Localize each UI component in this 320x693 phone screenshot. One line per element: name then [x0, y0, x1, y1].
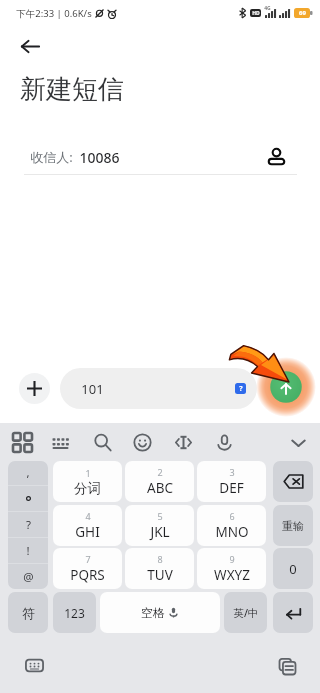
button[interactable]: !	[8, 538, 48, 563]
staticText: JKL	[150, 523, 170, 541]
button[interactable]: 0	[273, 548, 313, 589]
staticText: 0	[289, 560, 297, 578]
staticText: ABC	[147, 479, 173, 497]
staticText: 下午2:33 | 0.6K/s	[16, 7, 92, 20]
button[interactable]: 9	[197, 548, 266, 589]
staticText: 10086	[79, 148, 120, 167]
staticText: GHI	[75, 523, 100, 541]
staticText: !	[26, 543, 30, 559]
button[interactable]: 101	[60, 368, 257, 409]
staticText: 5	[157, 510, 163, 522]
staticText: 英/中	[233, 606, 259, 620]
button[interactable]	[8, 486, 48, 511]
button[interactable]: 4	[53, 505, 122, 546]
staticText: 69	[299, 9, 306, 17]
button[interactable]: Send	[256, 357, 316, 417]
staticText: WXYZ	[214, 566, 250, 584]
button[interactable]: Search	[86, 426, 118, 458]
button[interactable]: Enter	[273, 592, 313, 633]
staticText: 9	[229, 553, 235, 565]
staticText: MNO	[215, 523, 249, 541]
button[interactable]: Add attachment	[19, 373, 50, 404]
button[interactable]: 重输	[273, 505, 313, 546]
button[interactable]: 123	[53, 592, 96, 633]
staticText: TUV	[147, 566, 173, 584]
staticText: 1	[85, 467, 91, 479]
staticText: 收信人:	[30, 148, 73, 166]
staticText: 2	[157, 466, 163, 478]
button[interactable]: Backspace	[273, 461, 313, 502]
button[interactable]: Apps	[6, 426, 38, 458]
button[interactable]: Back	[16, 32, 44, 60]
button[interactable]: 1	[53, 461, 122, 502]
button[interactable]: 符	[8, 592, 48, 633]
staticText: 重输	[282, 519, 304, 533]
staticText: PQRS	[70, 566, 105, 584]
staticText: 符	[22, 605, 35, 621]
button[interactable]: 8	[125, 548, 194, 589]
button[interactable]: Keyboard layout	[44, 426, 76, 458]
button[interactable]: Voice input	[208, 426, 240, 458]
staticText: 8	[157, 553, 163, 565]
staticText: 4G	[264, 5, 271, 12]
button[interactable]: 2	[125, 461, 194, 502]
staticText: DEF	[219, 479, 244, 497]
button[interactable]: Hide keyboard	[282, 426, 314, 458]
button[interactable]: Pick contact	[261, 143, 291, 171]
button[interactable]: Move cursor	[167, 426, 199, 458]
staticText: ?	[239, 384, 243, 394]
button[interactable]: 空格	[100, 592, 220, 633]
button[interactable]: Switch keyboard	[18, 649, 50, 681]
staticText: 新建短信	[20, 73, 124, 106]
staticText: ,	[26, 465, 30, 481]
button[interactable]: 英/中	[224, 592, 267, 633]
staticText: 6	[229, 510, 235, 522]
staticText: 3	[229, 466, 235, 478]
staticText: 4	[85, 510, 91, 522]
button[interactable]: Clipboard	[271, 650, 303, 682]
staticText: 123	[64, 605, 85, 621]
staticText: 空格	[141, 605, 165, 620]
button[interactable]: @	[8, 564, 48, 589]
staticText: ?	[26, 517, 31, 533]
staticText: 7	[85, 553, 91, 565]
button[interactable]: 7	[53, 548, 122, 589]
staticText: @	[23, 569, 34, 585]
staticText: 101	[81, 380, 104, 398]
button[interactable]: ,	[8, 461, 48, 485]
staticText: HD	[252, 10, 260, 17]
button[interactable]: 5	[125, 505, 194, 546]
button[interactable]: 6	[197, 505, 266, 546]
button[interactable]: 3	[197, 461, 266, 502]
button[interactable]: Emoji	[126, 426, 158, 458]
button[interactable]: ?	[8, 512, 48, 537]
staticText: 分词	[74, 480, 101, 497]
